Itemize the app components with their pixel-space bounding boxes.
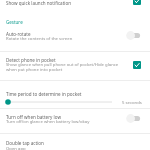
staticText: Double tap action bbox=[6, 140, 44, 146]
staticText: 5 seconds bbox=[122, 99, 142, 105]
staticText: Gesture bbox=[6, 19, 23, 25]
staticText: Auto-rotate bbox=[6, 31, 31, 37]
staticText: Show quick launch notification bbox=[6, 0, 72, 6]
button[interactable]: Toggle, off bbox=[126, 114, 141, 123]
staticText: Turn off when battery low bbox=[6, 114, 61, 120]
staticText: Open app bbox=[6, 145, 26, 150]
button[interactable] bbox=[0, 52, 150, 80]
staticText: Show glance when pull phone out of pocke… bbox=[6, 61, 119, 67]
button[interactable]: Checkbox, checked bbox=[133, 61, 141, 69]
staticText: Rotate the contents of the screen bbox=[6, 35, 73, 41]
button[interactable]: Checkbox, checked bbox=[133, 0, 141, 5]
button[interactable] bbox=[0, 134, 150, 150]
staticText: Time period to determine in pocket bbox=[6, 91, 82, 97]
button[interactable] bbox=[0, 81, 150, 108]
button[interactable] bbox=[0, 29, 150, 51]
staticText: when put phone into pocket bbox=[6, 66, 63, 72]
button[interactable] bbox=[0, 0, 150, 10]
button[interactable] bbox=[0, 109, 150, 133]
staticText: Turn off/on glance when battery low/okay bbox=[6, 118, 90, 124]
button[interactable]: Toggle, off bbox=[126, 31, 141, 40]
staticText: Detect phone in pocket bbox=[6, 57, 56, 63]
